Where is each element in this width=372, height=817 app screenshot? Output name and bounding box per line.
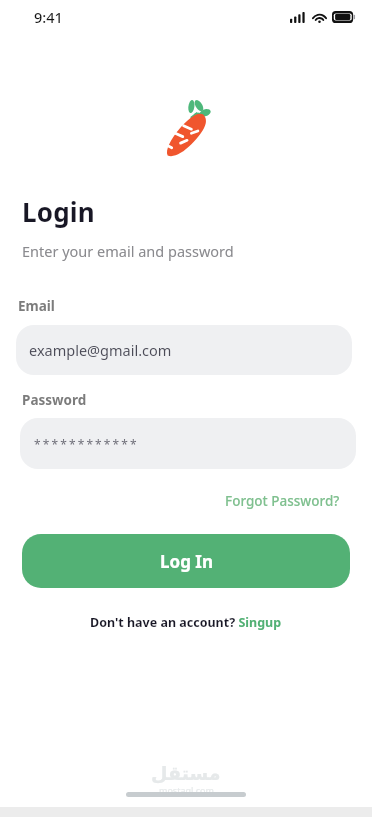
button[interactable]: Log In [22,534,350,588]
staticText: Log In [160,550,213,573]
button[interactable]: Forgot Password? [223,490,342,512]
staticText: mostaql.com [159,784,214,796]
button[interactable]: Don't have an account? Singup [86,610,286,635]
staticText: example@gmail.com [29,340,172,360]
staticText: 9:41 [34,7,63,27]
staticText: مستقل [151,762,221,784]
staticText: Enter your email and password [22,241,234,261]
button[interactable]: * * * * * * * * * * * * [20,418,356,469]
staticText: Forgot Password? [225,492,340,510]
staticText: Login [22,194,95,229]
staticText: Don't have an account? Singup [90,614,282,631]
staticText: Email [18,297,55,315]
staticText: * * * * * * * * * * * * [34,436,137,452]
staticText: Password [22,391,87,409]
button[interactable]: example@gmail.com [16,325,352,375]
